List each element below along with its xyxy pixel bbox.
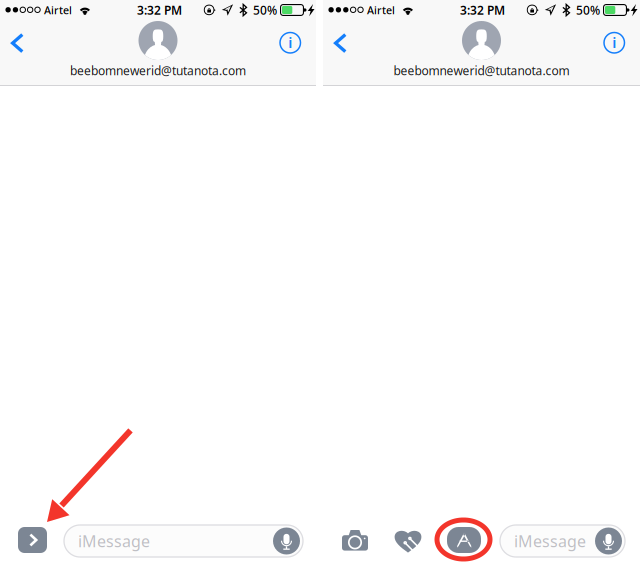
button[interactable]: Show app drawer (18, 527, 47, 553)
staticText: 50% (253, 2, 277, 18)
staticText: beebomnewerid@tutanota.com (70, 62, 246, 78)
staticText: i (612, 32, 616, 52)
staticText: 3:32 PM (137, 2, 182, 18)
staticText: iMessage (514, 530, 586, 552)
button[interactable]: iMessage (500, 525, 625, 557)
button[interactable]: Camera (333, 521, 375, 559)
button[interactable]: Digital Touch (386, 519, 430, 559)
staticText: 3:32 PM (460, 2, 505, 18)
staticText: Airtel (44, 3, 72, 17)
button[interactable]: Back (0, 26, 44, 60)
staticText: Airtel (367, 3, 395, 17)
button[interactable]: Details (272, 27, 314, 59)
button[interactable]: App Store (442, 518, 486, 560)
staticText: iMessage (78, 530, 150, 552)
staticText: i (288, 32, 292, 52)
button[interactable]: Details (596, 27, 638, 59)
button[interactable]: iMessage (64, 525, 303, 557)
button[interactable]: Back (323, 26, 367, 60)
staticText: 50% (576, 2, 600, 18)
staticText: beebomnewerid@tutanota.com (393, 62, 569, 78)
